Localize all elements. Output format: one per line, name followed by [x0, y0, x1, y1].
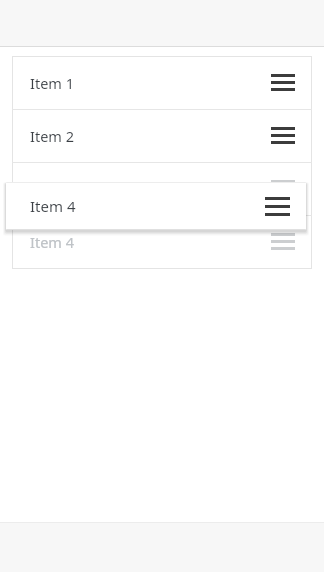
- button[interactable]: Item 3: [12, 163, 312, 215]
- staticText: Item 4: [30, 232, 74, 252]
- staticText: Item 3: [30, 179, 74, 199]
- button[interactable]: Item 2: [12, 110, 312, 162]
- staticText: Item 1: [30, 73, 74, 93]
- other: Drag handle: [270, 127, 296, 145]
- other: Drag handle: [270, 233, 296, 251]
- other: Drag handle: [270, 74, 296, 92]
- other: Drag handle: [270, 180, 296, 198]
- button[interactable]: Item 4: [12, 216, 312, 268]
- staticText: Item 2: [30, 126, 74, 146]
- other: Drag handle: [264, 197, 290, 216]
- staticText: Item 4: [30, 196, 76, 216]
- button[interactable]: Item 4: [6, 182, 306, 230]
- button[interactable]: Item 1: [12, 57, 312, 109]
